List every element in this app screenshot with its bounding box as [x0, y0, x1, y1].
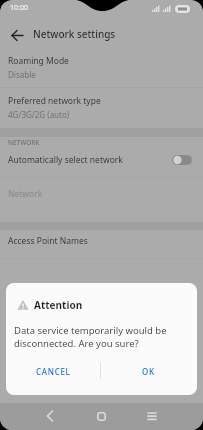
staticText: Automatically select network: [8, 154, 123, 166]
button[interactable]: Preferred network type: [0, 88, 203, 127]
button[interactable]: [91, 406, 111, 426]
button[interactable]: OK: [118, 359, 178, 383]
staticText: Network settings: [33, 27, 116, 41]
staticText: CANCEL: [36, 366, 71, 377]
button[interactable]: Access Point Names: [0, 230, 203, 250]
button[interactable]: [40, 406, 60, 426]
button[interactable]: Roaming Mode: [0, 50, 203, 87]
staticText: Disable: [8, 69, 36, 80]
staticText: Access Point Names: [8, 235, 88, 247]
staticText: Roaming Mode: [8, 55, 69, 67]
button[interactable]: CANCEL: [23, 359, 83, 383]
staticText: Preferred network type: [8, 95, 101, 107]
staticText: 10:00: [10, 3, 28, 13]
button[interactable]: [142, 406, 162, 426]
staticText: 4G/3G/2G (auto): [8, 109, 70, 120]
staticText: Network: [8, 188, 43, 200]
staticText: Data service temporarily would be discon…: [14, 324, 167, 350]
staticText: NETWORK: [8, 138, 40, 147]
button[interactable]: Automatically select network: [0, 150, 203, 170]
staticText: OK: [142, 366, 155, 377]
button[interactable]: [8, 26, 26, 44]
staticText: Attention: [34, 298, 83, 312]
